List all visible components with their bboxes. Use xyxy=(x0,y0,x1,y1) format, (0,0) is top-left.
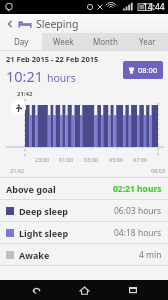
button[interactable]: Day xyxy=(0,33,42,50)
staticText: Light sleep xyxy=(19,227,69,239)
staticText: 06:03 hours xyxy=(114,205,162,217)
staticText: 14:44 xyxy=(143,1,165,13)
other: Sleep start marker xyxy=(11,100,26,115)
button[interactable]: Deep sleep xyxy=(0,200,168,221)
staticText: 04:18 hours xyxy=(114,227,162,239)
button[interactable]: Recent apps xyxy=(120,280,146,300)
staticText: 21 Feb 2015 - 22 Feb 2015 xyxy=(6,54,99,64)
button[interactable]: Month xyxy=(84,33,126,50)
staticText: Deep sleep xyxy=(19,205,68,217)
staticText: 05:00 xyxy=(109,156,124,163)
staticText: Sleeping xyxy=(36,17,79,31)
button[interactable]: Above goal xyxy=(0,178,168,199)
staticText: 08:00 xyxy=(138,65,158,75)
staticText: Awake xyxy=(19,249,50,261)
staticText: 23:00 xyxy=(35,156,50,163)
staticText: Month xyxy=(93,36,118,47)
staticText: hours xyxy=(47,71,76,85)
button[interactable]: Light sleep xyxy=(0,222,168,243)
button[interactable]: Week xyxy=(42,33,84,50)
button[interactable]: Year xyxy=(126,33,168,50)
staticText: 08:03 xyxy=(151,167,166,174)
button[interactable]: Back xyxy=(23,280,49,300)
staticText: 03:00 xyxy=(84,156,99,163)
button[interactable]: Awake xyxy=(0,244,168,265)
staticText: Above goal xyxy=(6,183,56,195)
staticText: 21:42 xyxy=(10,167,25,174)
staticText: Week xyxy=(53,36,74,47)
staticText: Day xyxy=(14,36,29,47)
button[interactable]: 08:00 xyxy=(123,61,163,79)
staticText: 02:21 hours xyxy=(113,183,162,195)
staticText: 4 min xyxy=(139,249,162,261)
staticText: 07:00 xyxy=(133,156,148,163)
staticText: Year xyxy=(139,36,156,47)
button[interactable]: Home xyxy=(71,280,97,300)
staticText: 01:00 xyxy=(59,156,74,163)
staticText: 10:21 xyxy=(6,66,44,86)
staticText: 21:42 xyxy=(17,90,33,98)
button[interactable]: Back xyxy=(3,17,17,31)
